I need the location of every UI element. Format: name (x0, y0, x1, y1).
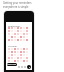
staticText: October (8, 44, 18, 47)
button[interactable]: Tab 1 (20, 65, 23, 68)
staticText: Getting your reminders (3, 1, 32, 5)
staticText: everywhere is simple (3, 5, 29, 9)
staticText: Reminder (7, 63, 17, 66)
button[interactable]: Reminder (7, 63, 17, 66)
staticText: September (8, 24, 21, 27)
button[interactable]: Add reminder (27, 65, 31, 69)
button[interactable]: Tab 2 (23, 65, 26, 68)
button[interactable]: Tab 0 (17, 65, 20, 68)
